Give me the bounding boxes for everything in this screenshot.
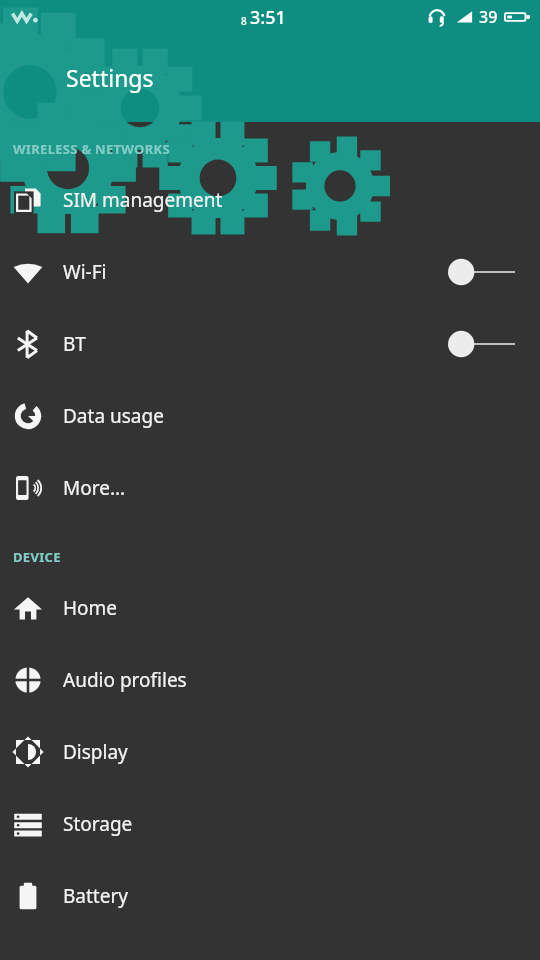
staticText: Settings <box>66 62 154 93</box>
button[interactable]: Display <box>0 716 540 788</box>
button[interactable]: Audio profiles <box>0 644 540 716</box>
staticText: 39 <box>479 6 498 28</box>
staticText: Audio profiles <box>63 667 527 693</box>
button[interactable]: Toggle Wi-Fi <box>447 252 527 292</box>
button[interactable]: SIM management <box>0 164 540 236</box>
button[interactable]: BT <box>0 308 540 380</box>
staticText: Display <box>63 739 527 765</box>
staticText: BT <box>63 331 447 357</box>
staticText: Wi-Fi <box>63 259 447 285</box>
button[interactable]: Wi-Fi <box>0 236 540 308</box>
button[interactable]: Battery <box>0 860 540 932</box>
staticText: 8 <box>241 14 247 28</box>
staticText: Home <box>63 595 527 621</box>
staticText: Storage <box>63 811 527 837</box>
button[interactable]: More... <box>0 452 540 524</box>
button[interactable]: Data usage <box>0 380 540 452</box>
staticText: SIM management <box>63 187 527 213</box>
button[interactable]: Storage <box>0 788 540 860</box>
staticText: Data usage <box>63 403 527 429</box>
staticText: DEVICE <box>13 548 540 566</box>
staticText: 3:51 <box>250 5 286 30</box>
button[interactable]: Toggle BT <box>447 324 527 364</box>
button[interactable]: Home <box>0 572 540 644</box>
staticText: WIRELESS & NETWORKS <box>13 140 540 158</box>
staticText: Battery <box>63 883 527 909</box>
staticText: More... <box>63 475 527 501</box>
